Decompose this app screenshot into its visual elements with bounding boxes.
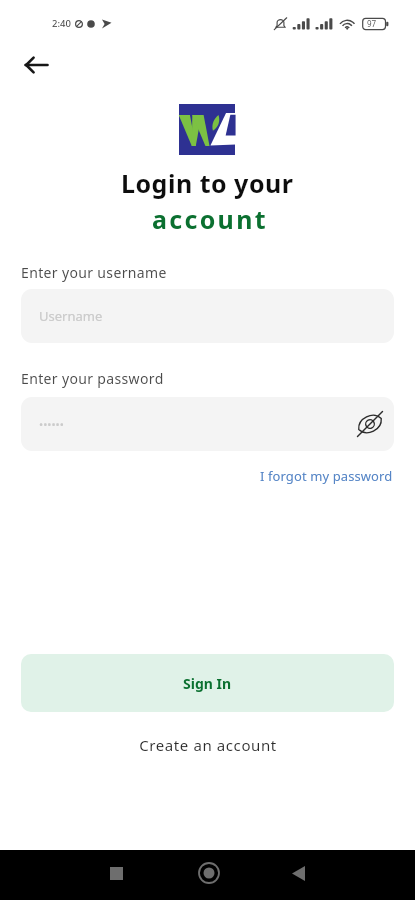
staticText: 2:40 (52, 17, 71, 30)
button[interactable]: Create an account (134, 730, 282, 760)
button[interactable]: Back (12, 41, 60, 89)
staticText: Enter your username (21, 263, 167, 282)
staticText: Username (39, 307, 103, 325)
staticText: 97 (367, 18, 377, 29)
button[interactable]: Toggle password visibility (353, 407, 387, 441)
button[interactable]: •••••• (21, 397, 394, 451)
staticText: Sign In (183, 674, 232, 693)
button[interactable]: Username (21, 289, 394, 343)
button[interactable]: Back (274, 849, 322, 897)
staticText: Login to your (121, 166, 294, 200)
staticText: account (152, 202, 268, 236)
staticText: Enter your password (21, 369, 164, 388)
button[interactable]: Home (185, 849, 233, 897)
button[interactable]: Sign In (21, 654, 394, 712)
staticText: •••••• (39, 417, 64, 432)
button[interactable]: Recents (92, 849, 140, 897)
button[interactable]: I forgot my password (257, 464, 396, 488)
